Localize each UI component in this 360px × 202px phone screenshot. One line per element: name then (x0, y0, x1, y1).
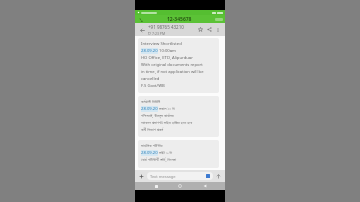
staticText: 10:00am (159, 48, 176, 54)
button[interactable]: কর্মখালী বিজ্ঞপ্তি (138, 96, 219, 137)
staticText: cancelled (141, 76, 160, 82)
staticText: HO Office, ETD, Alipurduar (141, 55, 193, 61)
button[interactable]: Back (201, 182, 209, 190)
staticText: আবেদন প্রমাণপত্র সহিত হাজির হতে হবে (141, 120, 193, 126)
staticText: Text message (150, 174, 206, 179)
button[interactable]: Call (137, 16, 144, 23)
button[interactable]: Attach (137, 172, 146, 181)
button[interactable]: Back (138, 26, 146, 34)
staticText: কর্মখালী বিজ্ঞপ্তি (141, 99, 160, 105)
button[interactable]: মাধ্যমিক পরীক্ষার (138, 140, 219, 168)
button[interactable]: More options (214, 26, 222, 34)
staticText: F.S Govt/WB (141, 83, 165, 89)
staticText: With original documents report (141, 62, 203, 68)
button[interactable]: 28.09.20 (141, 150, 158, 156)
staticText: পশ্চিমবঙ্গ, বীরভূম কার্যালয় (141, 113, 174, 119)
staticText: 12-345678 (167, 16, 192, 23)
staticText: Interview Shortlisted (141, 41, 182, 47)
button[interactable]: Home (176, 182, 184, 190)
staticText: মাধ্যমিক পরীক্ষার (141, 143, 163, 149)
staticText: in time, if not application will be (141, 69, 204, 75)
staticText: +91 98765 43210 (148, 24, 184, 30)
staticText: কর্মী নিয়োগ প্রকর্ম (141, 127, 164, 133)
staticText: 28.09.20 (141, 106, 158, 112)
staticText: 28.09.20 (141, 150, 158, 156)
staticText: সন্ধ্যা ৬ টা (159, 150, 172, 156)
staticText: বোর্ড পরীক্ষার্থী ভর্তি, দিনেমা (141, 157, 176, 163)
staticText: সকাল ১০ টা (159, 106, 175, 112)
staticText: 28.09.20 (141, 48, 158, 54)
button[interactable]: Interview Shortlisted (138, 38, 219, 93)
button[interactable]: Send (214, 172, 223, 181)
button[interactable]: 28.09.20 (141, 106, 158, 112)
button[interactable]: Share (205, 25, 214, 34)
button[interactable]: Text message (147, 172, 213, 180)
button[interactable]: Star (196, 25, 205, 34)
button[interactable]: Recents (152, 182, 160, 190)
staticText: 7:23 PM (152, 31, 166, 36)
button[interactable]: 28.09.20 (141, 48, 158, 54)
